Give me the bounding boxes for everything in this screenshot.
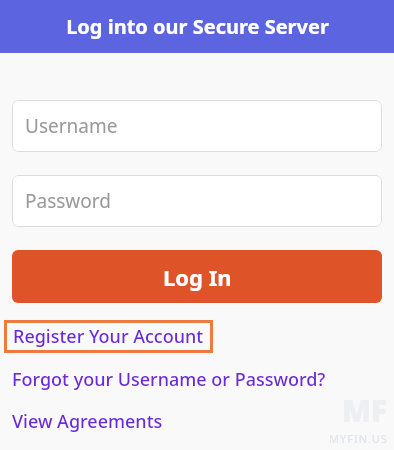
button[interactable]: Forgot your Username or Password? [12, 367, 326, 392]
staticText: Password [25, 188, 111, 214]
button[interactable]: View Agreements [12, 409, 163, 434]
staticText: View Agreements [12, 409, 163, 434]
button[interactable]: Username [12, 100, 382, 152]
staticText: MYFIN.US [329, 431, 388, 446]
staticText: Log In [163, 262, 232, 292]
staticText: Username [25, 113, 118, 139]
button[interactable]: Log In [12, 250, 382, 303]
staticText: Forgot your Username or Password? [12, 367, 326, 392]
staticText: MF [342, 390, 388, 431]
button[interactable]: Register Your Account [4, 320, 213, 353]
staticText: Log into our Secure Server [66, 13, 329, 40]
staticText: Register Your Account [13, 324, 204, 349]
button[interactable]: Password [12, 175, 382, 227]
